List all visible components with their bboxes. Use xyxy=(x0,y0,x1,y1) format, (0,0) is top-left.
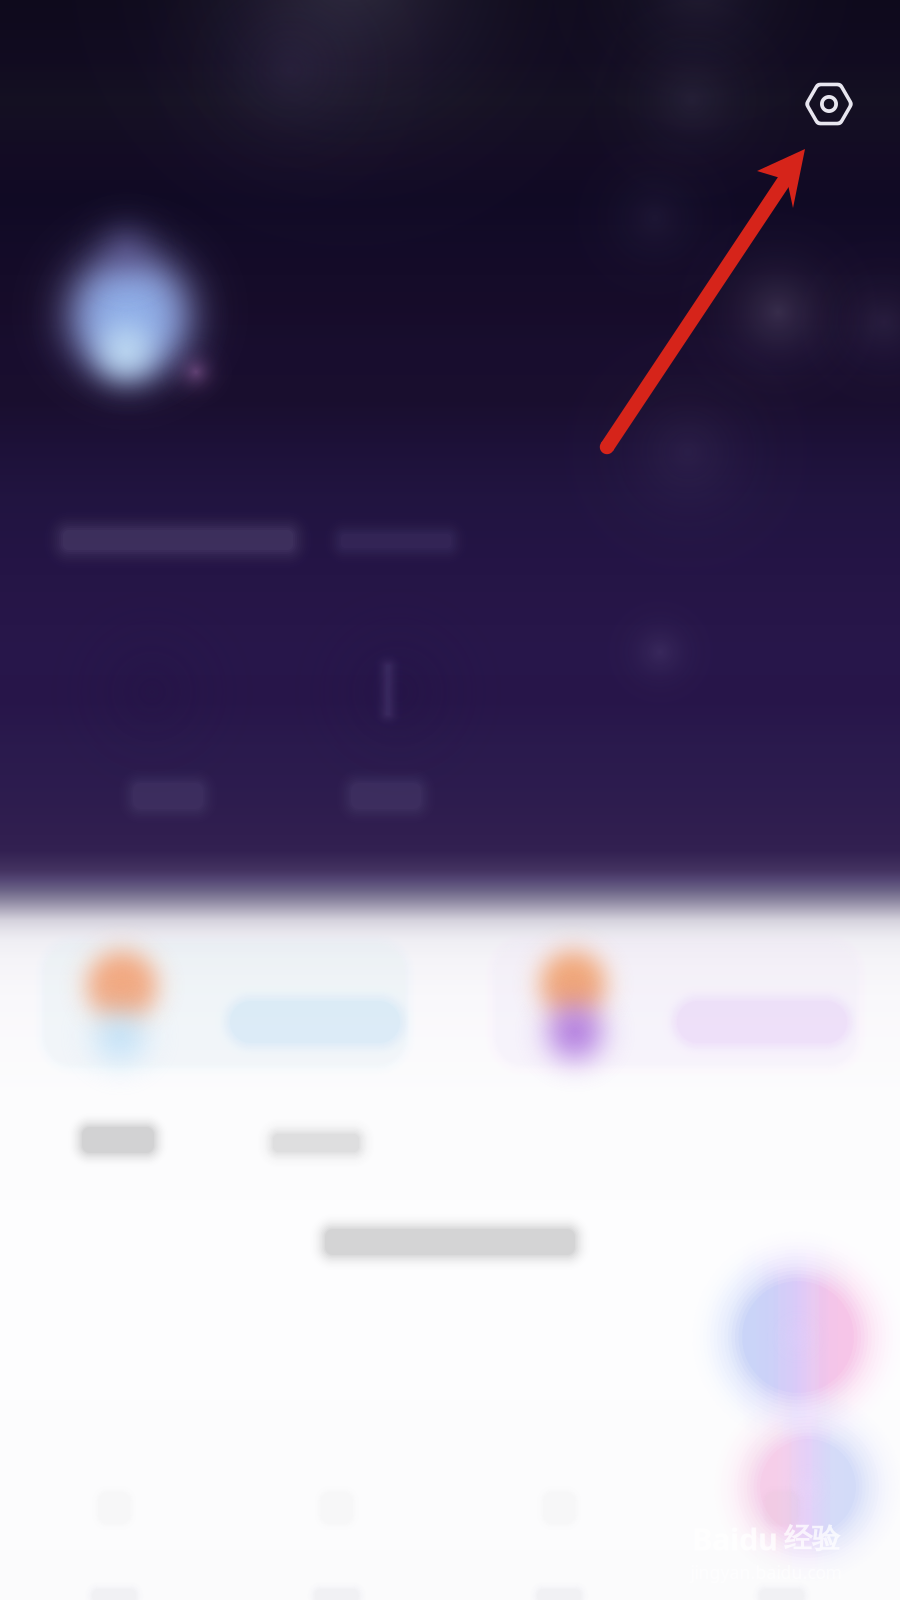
button[interactable]: Settings xyxy=(774,49,884,159)
button[interactable]: Scan xyxy=(683,1362,900,1600)
button[interactable]: Quick action two xyxy=(461,910,891,1100)
button[interactable]: Compose xyxy=(658,1197,900,1477)
button[interactable]: Me xyxy=(670,1476,893,1600)
staticText: Baidu xyxy=(692,1518,778,1559)
staticText: 经验 xyxy=(784,1521,840,1556)
button[interactable]: Quick action one xyxy=(10,910,440,1100)
